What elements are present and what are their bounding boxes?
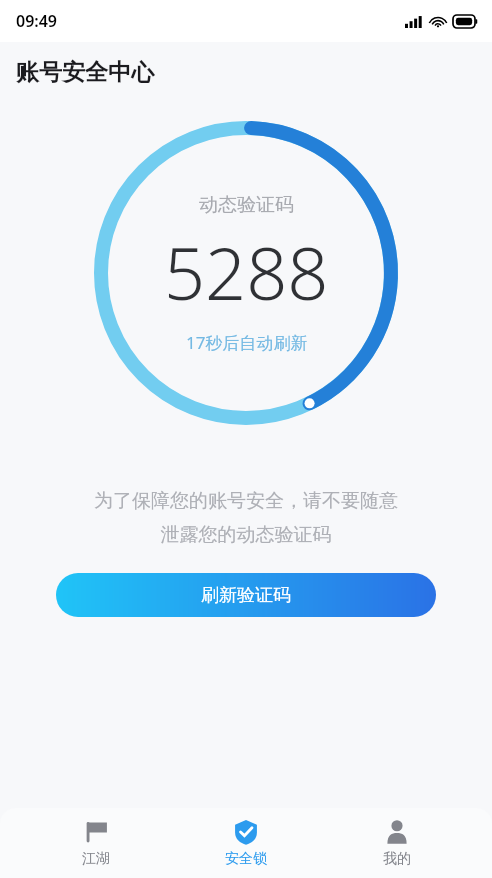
button[interactable]: 江湖 — [41, 811, 151, 876]
staticText: 我的 — [383, 850, 411, 868]
other: 我的 — [384, 819, 410, 845]
staticText: 09:49 — [16, 10, 58, 32]
staticText: 动态验证码 — [199, 193, 294, 217]
staticText: 刷新验证码 — [201, 584, 291, 607]
button[interactable]: 我的 — [342, 811, 452, 876]
staticText: 账号安全中心 — [16, 58, 154, 87]
button[interactable]: 刷新验证码 — [56, 573, 436, 617]
other: 安全锁 — [233, 819, 259, 845]
staticText: 为了保障您的账号安全，请不要随意 泄露您的动态验证码 — [36, 489, 456, 547]
button[interactable]: 安全锁 — [191, 811, 301, 876]
staticText: 江湖 — [82, 850, 110, 868]
staticText: 17秒后自动刷新 — [186, 331, 308, 354]
staticText: 安全锁 — [225, 850, 267, 868]
other: 江湖 — [83, 819, 109, 845]
staticText: 5288 — [164, 223, 329, 321]
